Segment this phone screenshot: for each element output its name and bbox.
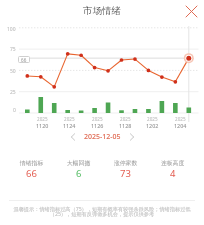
staticText: 100 (7, 26, 16, 33)
staticText: 2025 (120, 116, 131, 122)
staticText: 情绪指标 (20, 159, 44, 166)
staticText: 1126 (91, 122, 104, 128)
staticText: 75 (10, 46, 16, 53)
button[interactable]: Close (182, 2, 200, 20)
staticText: 2025-12-05 (84, 132, 121, 142)
button[interactable]: 情绪指标 (8, 159, 55, 180)
staticText: 4 (170, 167, 176, 180)
staticText: 2025 (64, 116, 75, 122)
staticText: 1202 (146, 122, 159, 128)
staticText: 2025 (37, 116, 48, 122)
staticText: 1128 (119, 122, 132, 128)
staticText: 温馨提示：情绪指标过高（75），短期有概率有较强杀跌风险；情绪指标过低（25），… (7, 205, 197, 217)
staticText: 66 (21, 57, 27, 63)
staticText: 50 (10, 68, 16, 75)
staticText: 2025 (175, 116, 186, 122)
staticText: 1204 (174, 122, 187, 128)
staticText: 1120 (36, 122, 49, 128)
staticText: 大幅回撤 (67, 159, 91, 166)
button[interactable]: 连板高度 (149, 159, 196, 180)
button[interactable]: Previous day (67, 131, 79, 143)
staticText: 2025 (92, 116, 103, 122)
staticText: 1124 (63, 122, 76, 128)
staticText: 0 (13, 107, 16, 114)
staticText: 66 (26, 167, 37, 180)
button[interactable]: 大幅回撤 (55, 159, 102, 180)
staticText: 6 (76, 167, 82, 180)
staticText: 市场情绪 (83, 5, 121, 17)
button[interactable]: 涨停家数 (102, 159, 149, 180)
staticText: 涨停家数 (114, 159, 138, 166)
staticText: 73 (120, 167, 131, 180)
staticText: 25 (10, 89, 16, 96)
staticText: 2025 (147, 116, 158, 122)
staticText: 连板高度 (161, 159, 185, 166)
button[interactable]: Next day (126, 131, 138, 143)
